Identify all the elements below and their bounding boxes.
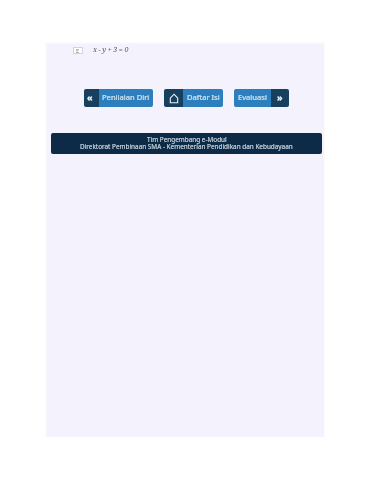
staticText: Direktorat Pembinaan SMA - Kementerian P… [80,142,293,151]
other: Previous [84,89,99,107]
staticText: Daftar Isi [187,92,220,102]
button[interactable]: Previous [84,89,153,107]
staticText: Evaluasi [238,92,267,102]
staticText: « [87,91,93,103]
staticText: » [277,91,283,103]
staticText: x − y + 3 = 0 [93,44,129,54]
other: Next [271,89,289,107]
button[interactable]: Evaluasi [234,89,289,107]
button[interactable]: Home [164,89,223,107]
staticText: E [76,47,80,54]
other: Home [164,89,183,107]
staticText: Tim Pengembang e-Modul [147,135,227,144]
staticText: Penilaian Diri [102,92,150,102]
